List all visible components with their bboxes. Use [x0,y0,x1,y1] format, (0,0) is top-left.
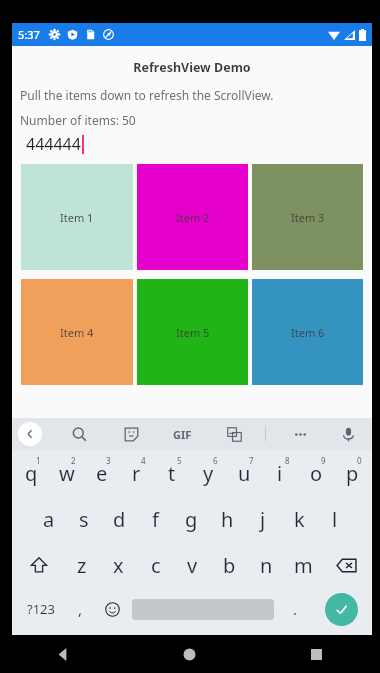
staticText: Pull the items down to refresh the Scrol… [20,87,274,103]
button[interactable]: h [209,500,245,538]
button[interactable]: f [137,500,173,538]
staticText: c [151,552,161,579]
button[interactable]: Enter [325,593,358,626]
button[interactable]: y [190,454,226,492]
staticText: e [96,460,108,487]
button[interactable]: Back [0,635,126,673]
staticText: p [346,460,359,487]
staticText: 2 [71,455,76,466]
button[interactable]: w [49,454,84,492]
staticText: 1 [36,455,41,466]
button[interactable]: Translate [223,423,245,445]
button[interactable]: u [226,454,262,492]
button[interactable]: s [66,500,101,538]
staticText: f [152,506,159,533]
staticText: q [25,460,38,487]
button[interactable]: m [285,546,322,584]
button[interactable]: Item 4 [21,279,133,385]
staticText: 9 [321,455,326,466]
button[interactable]: Home [126,635,253,673]
button[interactable]: g [173,500,209,538]
button[interactable]: More options [289,423,311,445]
button[interactable]: j [245,500,281,538]
staticText: n [260,552,273,579]
staticText: Item 4 [60,325,94,340]
button[interactable]: Shift [14,546,63,584]
staticText: z [77,552,87,579]
staticText: x [113,552,124,579]
staticText: v [187,552,198,579]
staticText: Number of items: 50 [20,112,136,128]
staticText: Item 5 [176,325,210,340]
button[interactable]: z [63,546,100,584]
staticText: RefreshView Demo [12,59,372,76]
button[interactable]: Item 6 [252,279,363,385]
staticText: l [332,506,338,533]
button[interactable]: b [211,546,248,584]
staticText: . [293,599,298,619]
staticText: ?123 [27,600,55,618]
button[interactable]: q [14,454,49,492]
staticText: 0 [357,455,362,466]
staticText: 7 [249,455,254,466]
button[interactable]: i [262,454,298,492]
button[interactable]: c [137,546,174,584]
staticText: 5 [177,455,182,466]
button[interactable]: . [277,590,314,628]
button[interactable]: e [84,454,119,492]
staticText: Item 6 [291,325,325,340]
button[interactable]: ?123 [16,590,65,628]
button[interactable]: GIF [171,427,194,442]
staticText: y [203,460,214,487]
button[interactable]: Emoji [95,590,129,628]
button[interactable]: n [248,546,285,584]
staticText: i [277,460,283,487]
button[interactable]: Item 5 [137,279,248,385]
button[interactable]: t [154,454,190,492]
staticText: o [310,460,323,487]
button[interactable]: Item 3 [252,164,363,270]
button[interactable]: Item 1 [21,164,133,270]
staticText: m [294,552,313,579]
staticText: Item 1 [60,210,94,225]
staticText: k [294,506,305,533]
staticText: 444444 [26,133,81,155]
staticText: GIF [173,427,192,442]
button[interactable]: Backspace [322,546,370,584]
button[interactable]: k [281,500,317,538]
button[interactable]: d [101,500,137,538]
button[interactable]: , [65,590,95,628]
staticText: s [79,506,89,533]
staticText: 6 [213,455,218,466]
button[interactable]: Voice input [337,423,359,445]
button[interactable]: Item 2 [137,164,248,270]
staticText: t [168,460,176,487]
staticText: d [113,506,126,533]
staticText: Item 2 [176,210,210,225]
staticText: 4 [141,455,146,466]
staticText: 5:37 [18,27,40,42]
staticText: r [132,460,141,487]
button[interactable]: Back [18,422,42,446]
staticText: a [43,506,55,533]
staticText: , [78,599,83,619]
staticText: Item 3 [291,210,325,225]
button[interactable]: r [119,454,154,492]
staticText: u [238,460,251,487]
staticText: j [260,506,266,533]
staticText: 8 [285,455,290,466]
staticText: 3 [106,455,111,466]
button[interactable]: Stickers [120,423,142,445]
button[interactable]: 444444 [26,133,84,155]
staticText: b [223,552,236,579]
button[interactable]: v [174,546,211,584]
button[interactable]: x [100,546,137,584]
button[interactable]: o [298,454,334,492]
button[interactable]: Recent apps [253,635,380,673]
button[interactable]: Search [68,423,90,445]
button[interactable]: a [31,500,66,538]
button[interactable]: l [317,500,353,538]
staticText: h [221,506,234,533]
button[interactable]: p [334,454,370,492]
